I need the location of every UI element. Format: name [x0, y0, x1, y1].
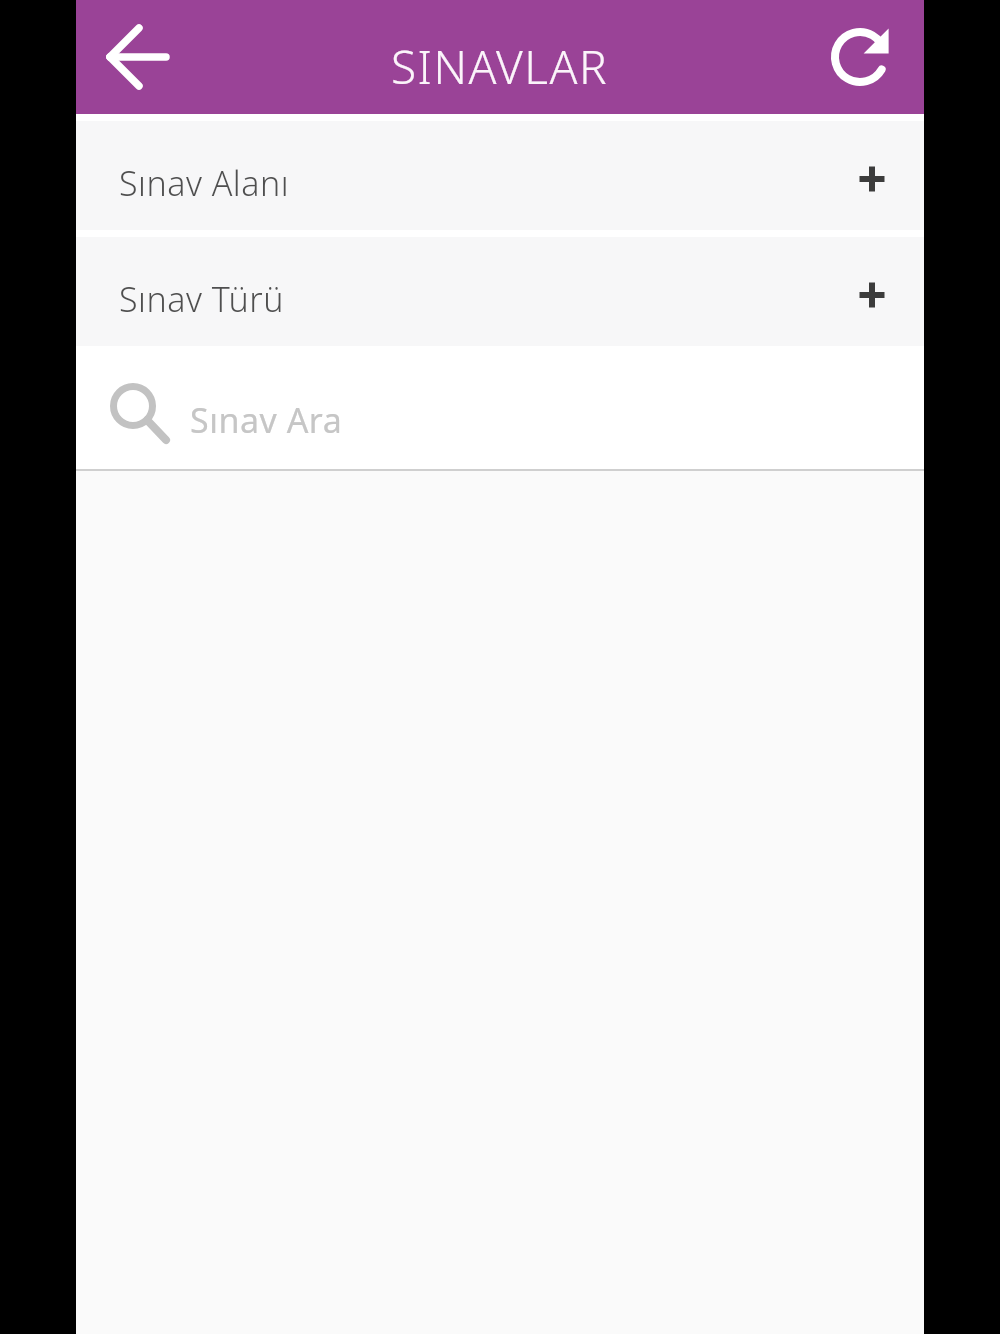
button[interactable]: [102, 23, 170, 91]
staticText: Sınav Alanı: [119, 160, 290, 206]
button[interactable]: Sınav Alanı: [76, 121, 924, 230]
button[interactable]: Sınav Türü: [76, 237, 924, 346]
staticText: Sınav Ara: [190, 397, 343, 443]
button[interactable]: [828, 25, 892, 89]
staticText: SINAVLAR: [391, 35, 609, 98]
button[interactable]: Sınav Ara: [76, 346, 924, 469]
staticText: Sınav Türü: [119, 276, 284, 322]
